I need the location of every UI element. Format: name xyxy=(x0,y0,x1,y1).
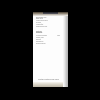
button[interactable]: Footer caption line here xyxy=(33,75,63,82)
staticText: Lorem ipsum dolor sit amet, consectetur … xyxy=(36,20,48,28)
staticText: Document title goes here xyxy=(36,16,48,20)
button[interactable]: Note xyxy=(57,35,61,37)
staticText: Footer caption line here xyxy=(38,78,59,80)
staticText: Section heading xyxy=(36,30,48,34)
button[interactable]: Document title goes here xyxy=(36,16,48,45)
staticText: Note xyxy=(57,35,61,37)
staticText: Ut enim ad minim veniam, quis nostrud ex… xyxy=(36,35,48,45)
